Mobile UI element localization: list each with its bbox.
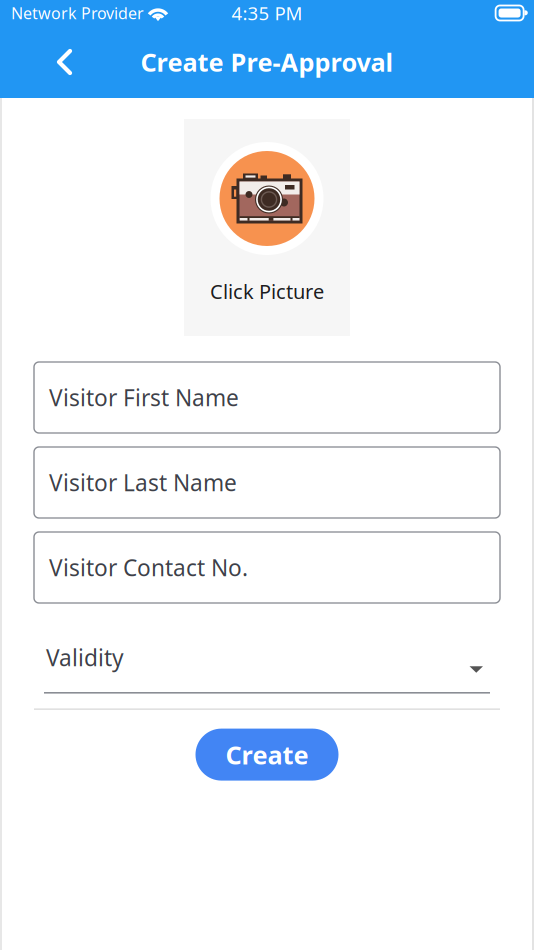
button[interactable]: Create <box>195 729 338 781</box>
staticText: Validity <box>46 642 124 672</box>
button[interactable]: Visitor First Name <box>34 362 500 433</box>
staticText: Visitor Contact No. <box>49 552 248 582</box>
button[interactable]: Visitor Contact No. <box>34 532 500 603</box>
staticText: Click Picture <box>210 278 324 305</box>
staticText: Visitor First Name <box>49 382 239 412</box>
staticText: 4:35 PM <box>231 1 302 25</box>
staticText: Visitor Last Name <box>49 467 237 497</box>
button[interactable]: Visitor Last Name <box>34 447 500 518</box>
button[interactable]: Choose validity <box>464 634 490 681</box>
staticText: Network Provider <box>11 2 144 24</box>
staticText: Create Pre-Approval <box>140 45 393 79</box>
button[interactable]: Back <box>0 35 96 89</box>
button[interactable]: Click Picture <box>184 119 350 336</box>
staticText: Create <box>225 738 308 771</box>
